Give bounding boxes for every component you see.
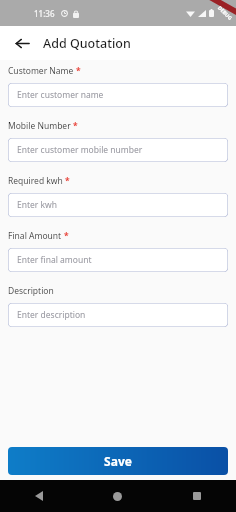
button[interactable]: Home xyxy=(78,480,157,512)
staticText: 11:36 xyxy=(34,8,55,19)
button[interactable]: Back xyxy=(9,30,35,56)
staticText: Add Quotation xyxy=(43,35,131,52)
button[interactable]: Back xyxy=(0,480,78,512)
staticText: Mobile Number xyxy=(8,120,71,132)
staticText: Save xyxy=(104,453,132,469)
button[interactable]: Enter description xyxy=(8,303,228,327)
staticText: * xyxy=(73,120,78,132)
staticText: DEBUG xyxy=(216,5,234,22)
button[interactable]: Enter final amount xyxy=(8,248,228,272)
button[interactable]: Save xyxy=(8,447,228,475)
staticText: Enter final amount xyxy=(17,254,92,266)
staticText: Enter kwh xyxy=(17,199,58,211)
staticText: * xyxy=(64,230,69,242)
staticText: * xyxy=(65,175,70,187)
button[interactable]: Enter customer name xyxy=(8,83,228,107)
staticText: Enter description xyxy=(17,309,86,321)
staticText: Final Amount xyxy=(8,230,62,242)
button[interactable]: Enter customer mobile number xyxy=(8,138,228,162)
staticText: Enter customer mobile number xyxy=(17,144,143,156)
staticText: Description xyxy=(8,285,54,297)
button[interactable]: Recent apps xyxy=(157,480,236,512)
staticText: Enter customer name xyxy=(17,89,104,101)
staticText: Customer Name xyxy=(8,65,74,77)
staticText: Required kwh xyxy=(8,175,63,187)
staticText: * xyxy=(76,65,81,77)
button[interactable]: Enter kwh xyxy=(8,193,228,217)
